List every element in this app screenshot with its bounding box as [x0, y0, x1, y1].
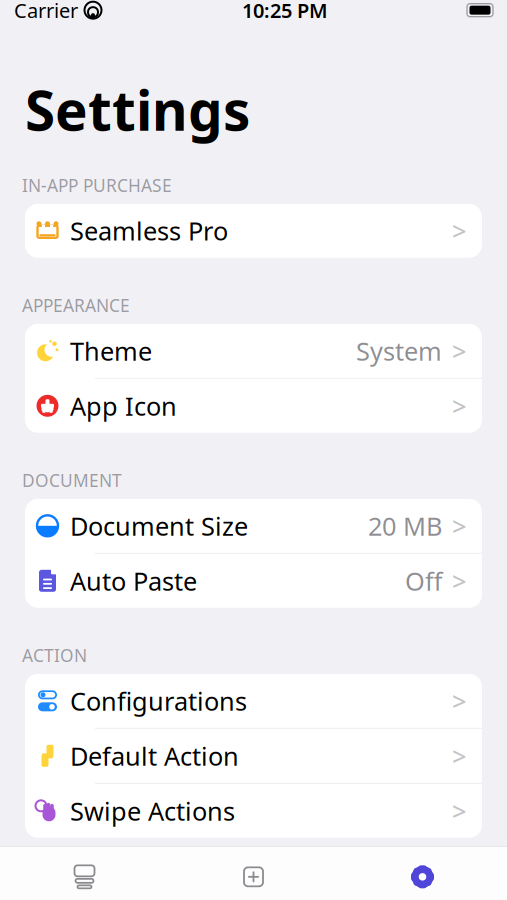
button[interactable]: Layers	[0, 847, 169, 900]
staticText: >	[452, 334, 466, 368]
staticText: Default Action	[70, 739, 239, 773]
staticText: 20 MB	[368, 509, 442, 543]
button[interactable]: New	[169, 847, 338, 900]
staticText: IN-APP PURCHASE	[22, 174, 172, 197]
staticText: Off	[405, 564, 442, 598]
staticText: >	[452, 214, 466, 248]
button[interactable]: App Icon	[25, 379, 482, 433]
staticText: APPEARANCE	[22, 294, 130, 317]
staticText: ACTION	[22, 644, 87, 667]
staticText: >	[452, 739, 466, 773]
staticText: >	[452, 794, 466, 828]
staticText: >	[452, 389, 466, 423]
staticText: DOCUMENT	[22, 469, 122, 492]
staticText: >	[452, 564, 466, 598]
button[interactable]: Configurations	[25, 674, 482, 729]
staticText: Theme	[70, 334, 152, 368]
button[interactable]: Settings	[338, 847, 507, 900]
button[interactable]: Seamless Pro	[25, 204, 482, 258]
button[interactable]: Auto Paste	[25, 554, 482, 608]
staticText: Configurations	[70, 684, 247, 718]
button[interactable]: Theme	[25, 324, 482, 379]
button[interactable]: Swipe Actions	[25, 784, 482, 838]
staticText: 10:25 PM	[242, 0, 328, 23]
staticText: Swipe Actions	[70, 794, 235, 828]
staticText: System	[356, 334, 442, 368]
button[interactable]: Document Size	[25, 499, 482, 554]
staticText: Seamless Pro	[70, 214, 228, 248]
staticText: >	[452, 684, 466, 718]
staticText: Carrier	[14, 0, 78, 23]
staticText: >	[452, 509, 466, 543]
staticText: App Icon	[70, 389, 177, 423]
staticText: Document Size	[70, 509, 248, 543]
button[interactable]: Default Action	[25, 729, 482, 784]
staticText: Settings	[25, 73, 250, 146]
staticText: Auto Paste	[70, 564, 197, 598]
